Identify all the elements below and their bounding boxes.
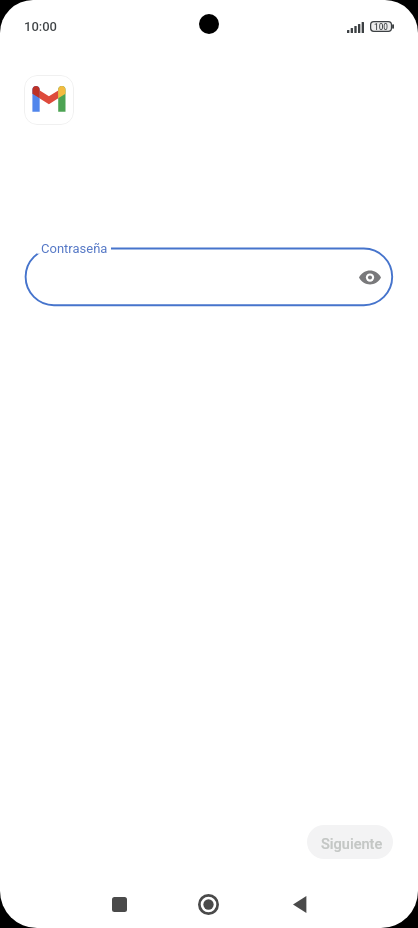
button[interactable]: Contraseña [14,238,404,318]
button[interactable]: Gmail [24,75,74,125]
staticText: Contraseña [41,241,108,256]
staticText: 100 [374,22,388,32]
button[interactable]: Inicio [186,882,231,927]
button[interactable]: Mostrar contraseña [349,257,390,298]
staticText: 10:00 [24,19,57,34]
staticText: Siguiente [321,835,383,852]
button[interactable]: Atrás [277,882,322,927]
button[interactable]: Siguiente [307,825,393,859]
button[interactable]: Recientes [96,882,141,927]
